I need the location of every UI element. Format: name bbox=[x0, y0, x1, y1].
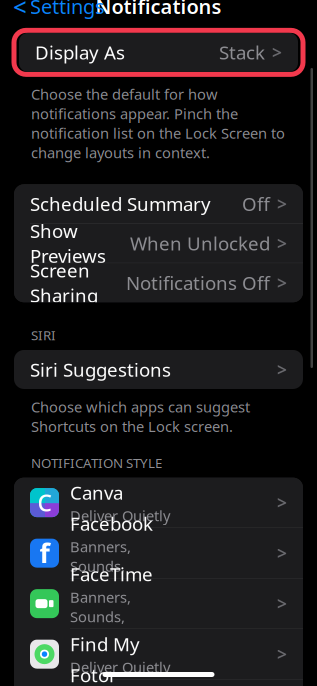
staticText: > bbox=[277, 192, 287, 215]
staticText: Off bbox=[242, 191, 270, 216]
staticText: Banners, Sounds, Badges bbox=[70, 587, 131, 646]
staticText: Deliver Quietly bbox=[70, 506, 170, 525]
button[interactable]: Siri Suggestions bbox=[14, 350, 303, 389]
staticText: Settings bbox=[30, 0, 105, 20]
button[interactable]: Display As bbox=[19, 33, 298, 72]
button[interactable]: f bbox=[14, 528, 303, 578]
button[interactable]: Show Previews bbox=[14, 224, 303, 263]
staticText: When Unlocked bbox=[130, 231, 270, 256]
button[interactable]: C bbox=[14, 478, 303, 528]
staticText: < bbox=[13, 0, 27, 22]
staticText: SIRI bbox=[31, 326, 56, 344]
staticText: > bbox=[277, 232, 287, 255]
button[interactable]: FaceTime bbox=[14, 579, 303, 629]
staticText: Notifications Off bbox=[126, 270, 270, 295]
staticText: Deliver Quietly bbox=[70, 657, 170, 677]
staticText: > bbox=[272, 41, 282, 64]
staticText: C bbox=[37, 488, 51, 518]
staticText: Facebook bbox=[70, 511, 153, 536]
staticText: > bbox=[277, 358, 287, 381]
staticText: > bbox=[277, 491, 287, 514]
staticText: > bbox=[277, 643, 287, 666]
button[interactable]: Find My bbox=[14, 629, 303, 679]
staticText: > bbox=[277, 542, 287, 565]
staticText: f bbox=[39, 535, 49, 571]
staticText: Siri Suggestions bbox=[30, 357, 171, 382]
staticText: Stack bbox=[219, 40, 265, 65]
staticText: Choose which apps can suggest Shortcuts … bbox=[31, 397, 250, 436]
staticText: Notifications bbox=[95, 0, 221, 20]
staticText: Find My bbox=[70, 631, 140, 656]
button[interactable]: Scheduled Summary bbox=[14, 184, 303, 223]
staticText: NOTIFICATION STYLE bbox=[31, 454, 162, 472]
staticText: FaceTime bbox=[70, 561, 153, 586]
staticText: > bbox=[277, 592, 287, 615]
staticText: Display As bbox=[35, 40, 125, 65]
staticText: Fotor bbox=[70, 662, 117, 686]
staticText: Show Previews bbox=[30, 218, 106, 268]
staticText: > bbox=[277, 271, 287, 294]
button[interactable]: Fotor bbox=[14, 680, 303, 686]
staticText: Canva bbox=[70, 480, 123, 505]
button[interactable]: < bbox=[3, 0, 115, 23]
staticText: Screen Sharing bbox=[30, 258, 98, 308]
staticText: Scheduled Summary bbox=[30, 191, 211, 216]
staticText: Banners, Sounds, Badges bbox=[70, 537, 131, 595]
staticText: Choose the default for how notifications… bbox=[31, 84, 285, 162]
button[interactable]: Screen Sharing bbox=[14, 263, 303, 302]
